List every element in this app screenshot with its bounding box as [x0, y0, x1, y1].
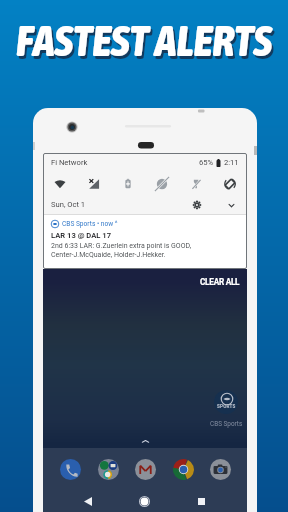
- button[interactable]: SPORTS: [206, 390, 246, 428]
- button[interactable]: Settings: [190, 198, 204, 212]
- button[interactable]: Flashlight: [189, 173, 203, 195]
- staticText: SPORTS: [217, 404, 236, 409]
- button[interactable]: Mobile data off: [87, 173, 101, 195]
- button[interactable]: Home: [134, 491, 155, 512]
- staticText: FASTEST ALERTS: [18, 18, 274, 68]
- button[interactable]: Gmail: [133, 457, 157, 481]
- button[interactable]: CBS Sports • now ^: [43, 215, 247, 259]
- button[interactable]: CLEAR ALL: [193, 274, 247, 290]
- staticText: 65%: [199, 158, 214, 167]
- staticText: CBS Sports • now ^: [62, 220, 118, 228]
- staticText: Fi Network: [51, 158, 88, 167]
- button[interactable]: Phone: [58, 457, 82, 481]
- staticText: Sun, Oct 1: [51, 200, 86, 209]
- staticText: LAR 13 @ DAL 17: [51, 231, 112, 240]
- button[interactable]: Chrome: [171, 457, 195, 481]
- button[interactable]: Apps folder: [96, 457, 120, 481]
- button[interactable]: Recent apps: [191, 491, 212, 512]
- button[interactable]: Expand: [224, 198, 238, 212]
- button[interactable]: Wi-Fi: [53, 173, 67, 195]
- staticText: CBS Sports: [210, 420, 243, 428]
- button[interactable]: Auto rotate: [223, 173, 237, 195]
- staticText: FASTEST ALERTS: [16, 15, 272, 65]
- staticText: 2nd 6:33 LAR: G.Zuerlein extra point is …: [51, 242, 192, 259]
- button[interactable]: Camera: [208, 457, 232, 481]
- button[interactable]: Do not disturb: [155, 173, 169, 195]
- button[interactable]: Back: [77, 491, 98, 512]
- button[interactable]: Battery saver: [121, 173, 135, 195]
- staticText: 2:11: [224, 158, 239, 167]
- staticText: CLEAR ALL: [200, 277, 240, 287]
